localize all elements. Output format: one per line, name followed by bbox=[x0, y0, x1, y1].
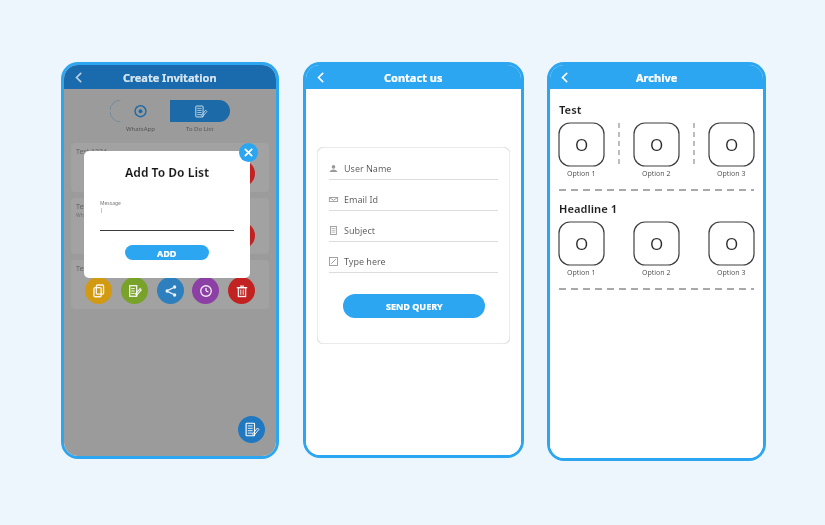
staticText: Archive bbox=[636, 70, 678, 85]
button[interactable]: Type here bbox=[329, 255, 498, 273]
staticText: Option 3 bbox=[717, 268, 746, 278]
staticText: Headline 1 bbox=[559, 201, 617, 216]
staticText: Add To Do List bbox=[125, 164, 210, 180]
button[interactable]: Copy bbox=[85, 277, 112, 304]
staticText: Create Invitation bbox=[123, 70, 217, 85]
button[interactable]: O bbox=[709, 222, 754, 265]
staticText: Option 2 bbox=[642, 169, 671, 179]
button[interactable]: O bbox=[559, 222, 604, 265]
button[interactable]: Reminder bbox=[192, 160, 219, 187]
staticText: Option 1 bbox=[567, 169, 596, 179]
button[interactable]: Close bbox=[239, 143, 258, 162]
staticText: O bbox=[725, 232, 739, 255]
button[interactable]: O bbox=[559, 123, 604, 166]
staticText: User Name bbox=[344, 162, 392, 174]
button[interactable]: O bbox=[634, 123, 679, 166]
button[interactable] bbox=[110, 100, 170, 122]
staticText: Option 2 bbox=[642, 268, 671, 278]
button[interactable]: Test 1234 bbox=[71, 143, 269, 192]
button[interactable]: Edit bbox=[121, 222, 148, 249]
button[interactable]: Share bbox=[157, 277, 184, 304]
button[interactable]: Share bbox=[157, 160, 184, 187]
staticText: WhatsApp bbox=[126, 125, 155, 133]
staticText: O bbox=[650, 232, 664, 255]
staticText: Test 1234 bbox=[76, 147, 108, 157]
button[interactable]: Copy bbox=[85, 222, 112, 249]
staticText: Test bbox=[76, 202, 90, 212]
button[interactable]: O bbox=[634, 222, 679, 265]
staticText: Option 1 bbox=[567, 268, 596, 278]
button[interactable]: Reminder bbox=[192, 222, 219, 249]
button[interactable] bbox=[170, 100, 230, 122]
button[interactable]: O bbox=[709, 123, 754, 166]
staticText: Email Id bbox=[344, 193, 379, 205]
button[interactable]: Back bbox=[310, 67, 331, 88]
staticText: SEND QUERY bbox=[386, 300, 443, 312]
staticText: Type here bbox=[344, 255, 386, 267]
staticText: Option 3 bbox=[717, 169, 746, 179]
staticText: To Do List bbox=[186, 125, 214, 133]
staticText: Test bbox=[76, 264, 90, 274]
button[interactable]: Test bbox=[71, 260, 269, 309]
staticText: Test bbox=[559, 102, 582, 117]
button[interactable]: ADD bbox=[125, 245, 209, 260]
staticText: O bbox=[650, 133, 664, 156]
button[interactable]: User Name bbox=[329, 162, 498, 180]
staticText: | bbox=[100, 207, 103, 214]
staticText: Whats bbox=[76, 212, 91, 219]
button[interactable]: Delete bbox=[228, 160, 255, 187]
staticText: ADD bbox=[157, 247, 177, 259]
button[interactable]: Email Id bbox=[329, 193, 498, 211]
staticText: Contact us bbox=[384, 70, 443, 85]
button[interactable]: Delete bbox=[228, 222, 255, 249]
button[interactable]: Share bbox=[157, 222, 184, 249]
button[interactable]: New note bbox=[238, 416, 265, 443]
button[interactable]: Reminder bbox=[192, 277, 219, 304]
staticText: O bbox=[575, 232, 589, 255]
button[interactable]: Back bbox=[554, 67, 575, 88]
staticText: O bbox=[575, 133, 589, 156]
staticText: Subject bbox=[344, 224, 376, 236]
button[interactable]: Back bbox=[68, 67, 89, 88]
button[interactable]: Test bbox=[71, 198, 269, 254]
button[interactable]: Edit bbox=[121, 160, 148, 187]
staticText: O bbox=[725, 133, 739, 156]
button[interactable]: Subject bbox=[329, 224, 498, 242]
button[interactable]: Delete bbox=[228, 277, 255, 304]
button[interactable]: Edit bbox=[121, 277, 148, 304]
button[interactable]: SEND QUERY bbox=[343, 294, 485, 318]
staticText: Message bbox=[100, 200, 121, 207]
